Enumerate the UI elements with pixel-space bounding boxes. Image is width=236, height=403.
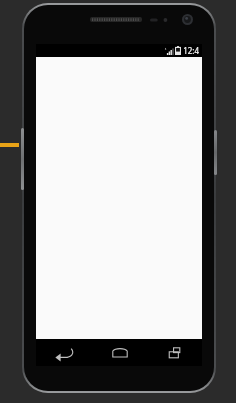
other: Power	[214, 130, 217, 175]
button[interactable]: Recent apps	[147, 339, 202, 366]
other: Volume	[21, 128, 24, 190]
staticText: 12:4	[183, 45, 199, 56]
button[interactable]: Home	[92, 339, 147, 366]
button[interactable]: Back	[36, 339, 92, 366]
